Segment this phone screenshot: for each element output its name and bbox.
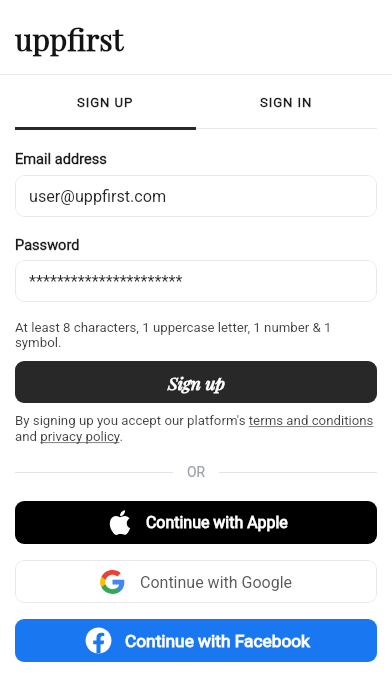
staticText: OR [187,464,205,480]
button[interactable]: SIGN UP [15,75,196,129]
staticText: ********************** [29,272,183,291]
button[interactable]: Continue with Apple [15,501,377,544]
button[interactable]: ********************** [15,260,377,302]
staticText: SIGN IN [260,95,313,110]
button[interactable]: Sign up [15,361,377,403]
button[interactable]: Continue with Facebook [15,619,377,662]
button[interactable]: user@uppfirst.com [15,175,377,217]
button[interactable]: Continue with Google [15,560,377,603]
staticText: By signing up you accept our platform's … [15,413,377,445]
staticText: Continue with Apple [146,513,288,532]
staticText: Continue with Google [140,573,293,592]
staticText: user@uppfirst.com [29,187,167,206]
button[interactable]: SIGN IN [196,75,377,129]
staticText: Continue with Facebook [125,631,310,651]
staticText: At least 8 characters, 1 uppercase lette… [15,320,377,350]
staticText: SIGN UP [77,95,134,110]
staticText: uppfirst [15,19,124,59]
staticText: Sign up [168,371,225,394]
staticText: Password [15,236,80,253]
staticText: Email address [15,150,107,167]
